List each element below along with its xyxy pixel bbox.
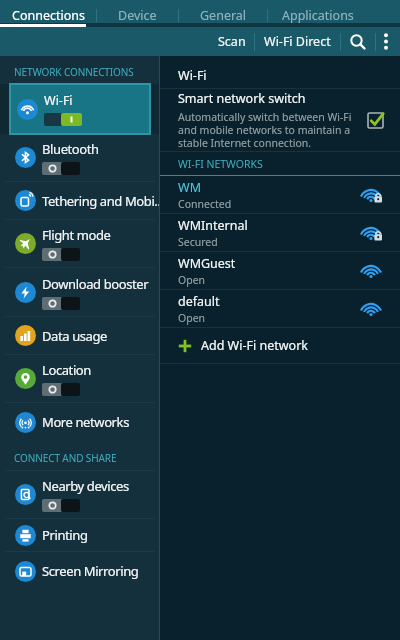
staticText: default [178, 293, 220, 310]
staticText: Wi-Fi [44, 92, 73, 109]
staticText: Add Wi-Fi network [201, 337, 308, 354]
staticText: Location [42, 361, 91, 379]
button[interactable]: Connections [0, 3, 96, 27]
staticText: Bluetooth [42, 140, 99, 158]
staticText: Tethering and Mobi.. [42, 192, 159, 210]
button[interactable]: Data usage [0, 317, 159, 354]
button[interactable]: default [160, 290, 400, 327]
button[interactable]: WMInternal [160, 214, 400, 251]
button[interactable]: More networks [0, 403, 159, 441]
staticText: Nearby devices [42, 477, 129, 495]
staticText: Secured [178, 235, 218, 249]
button[interactable] [376, 30, 396, 53]
staticText: Applications [282, 7, 354, 24]
staticText: Download booster [42, 275, 149, 293]
staticText: Scan [218, 33, 246, 50]
button[interactable]: Flight mode [0, 220, 159, 267]
button[interactable]: Add Wi-Fi network [160, 328, 400, 363]
button[interactable]: General [179, 3, 267, 27]
staticText: Open [178, 273, 206, 287]
staticText: WI-FI NETWORKS [178, 157, 263, 171]
button[interactable] [341, 29, 375, 55]
button[interactable]: WMGuest [160, 252, 400, 289]
staticText: General [200, 7, 247, 24]
staticText: Device [118, 7, 157, 24]
staticText: Wi-Fi Direct [264, 33, 331, 50]
button[interactable]: Applications [268, 3, 368, 27]
staticText: Printing [42, 526, 88, 544]
staticText: Screen Mirroring [42, 562, 139, 580]
button[interactable]: Nearby devices [0, 471, 159, 518]
staticText: Data usage [42, 327, 108, 345]
staticText: Connected [178, 197, 232, 211]
button[interactable]: Printing [0, 519, 159, 551]
button[interactable]: Wi-Fi Direct [255, 29, 340, 54]
staticText: Wi-Fi [178, 67, 207, 84]
staticText: Automatically switch between Wi-Fi and m… [178, 110, 363, 150]
staticText: Flight mode [42, 226, 111, 244]
button[interactable]: Location [0, 355, 159, 402]
staticText: More networks [42, 413, 129, 431]
staticText: Smart network switch [178, 90, 306, 107]
staticText: WM [178, 179, 201, 196]
button[interactable]: Smart network switch [160, 89, 400, 151]
staticText: Open [178, 311, 206, 325]
button[interactable]: Device [97, 3, 178, 27]
button[interactable]: Bluetooth [0, 134, 159, 181]
staticText: Connections [12, 7, 85, 24]
staticText: WMInternal [178, 217, 248, 234]
button[interactable]: WM [160, 176, 400, 213]
staticText: NETWORK CONNECTIONS [14, 65, 134, 79]
button[interactable]: Scan [210, 29, 254, 54]
staticText: WMGuest [178, 255, 236, 272]
staticText: CONNECT AND SHARE [14, 451, 117, 465]
button[interactable]: Wi-Fi [0, 84, 159, 134]
button[interactable]: Download booster [0, 268, 159, 316]
button[interactable]: Screen Mirroring [0, 552, 159, 590]
button[interactable]: Tethering and Mobi.. [0, 182, 159, 219]
